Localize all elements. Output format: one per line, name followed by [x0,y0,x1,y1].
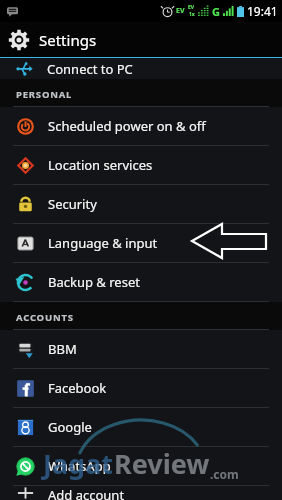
staticText: Add account [48,486,125,500]
button[interactable]: Backup & reset [0,263,282,301]
staticText: Backup & reset [48,273,140,291]
button[interactable]: Google [0,408,282,446]
button[interactable]: Connect to PC [0,58,282,79]
staticText: .com [210,466,239,482]
staticText: Location services [48,156,153,174]
staticText: Google [48,418,92,436]
staticText: Jagat [43,445,114,482]
staticText: BBM [48,340,77,358]
button[interactable]: Language & input [0,224,282,262]
staticText: Security [48,195,97,213]
staticText: Review [114,445,210,482]
staticText: Settings [39,30,97,50]
staticText: ACCOUNTS [16,311,74,324]
staticText: Language & input [48,234,158,252]
button[interactable]: Add account [0,486,282,500]
button[interactable]: Security [0,185,282,223]
button[interactable]: Scheduled power on & off [0,107,282,145]
button[interactable]: WhatsApp [0,447,282,485]
staticText: PERSONAL [16,88,73,101]
staticText: G [212,4,220,19]
staticText: EV [188,4,195,11]
staticText: EV [176,6,185,16]
staticText: 1x [189,11,195,18]
staticText: Facebook [48,379,107,397]
staticText: WhatsApp [48,457,111,475]
staticText: 19:41 [247,3,278,19]
button[interactable]: Facebook [0,369,282,407]
staticText: Scheduled power on & off [48,117,206,135]
button[interactable]: BBM [0,330,282,368]
button[interactable]: Location services [0,146,282,184]
staticText: Connect to PC [47,60,133,78]
